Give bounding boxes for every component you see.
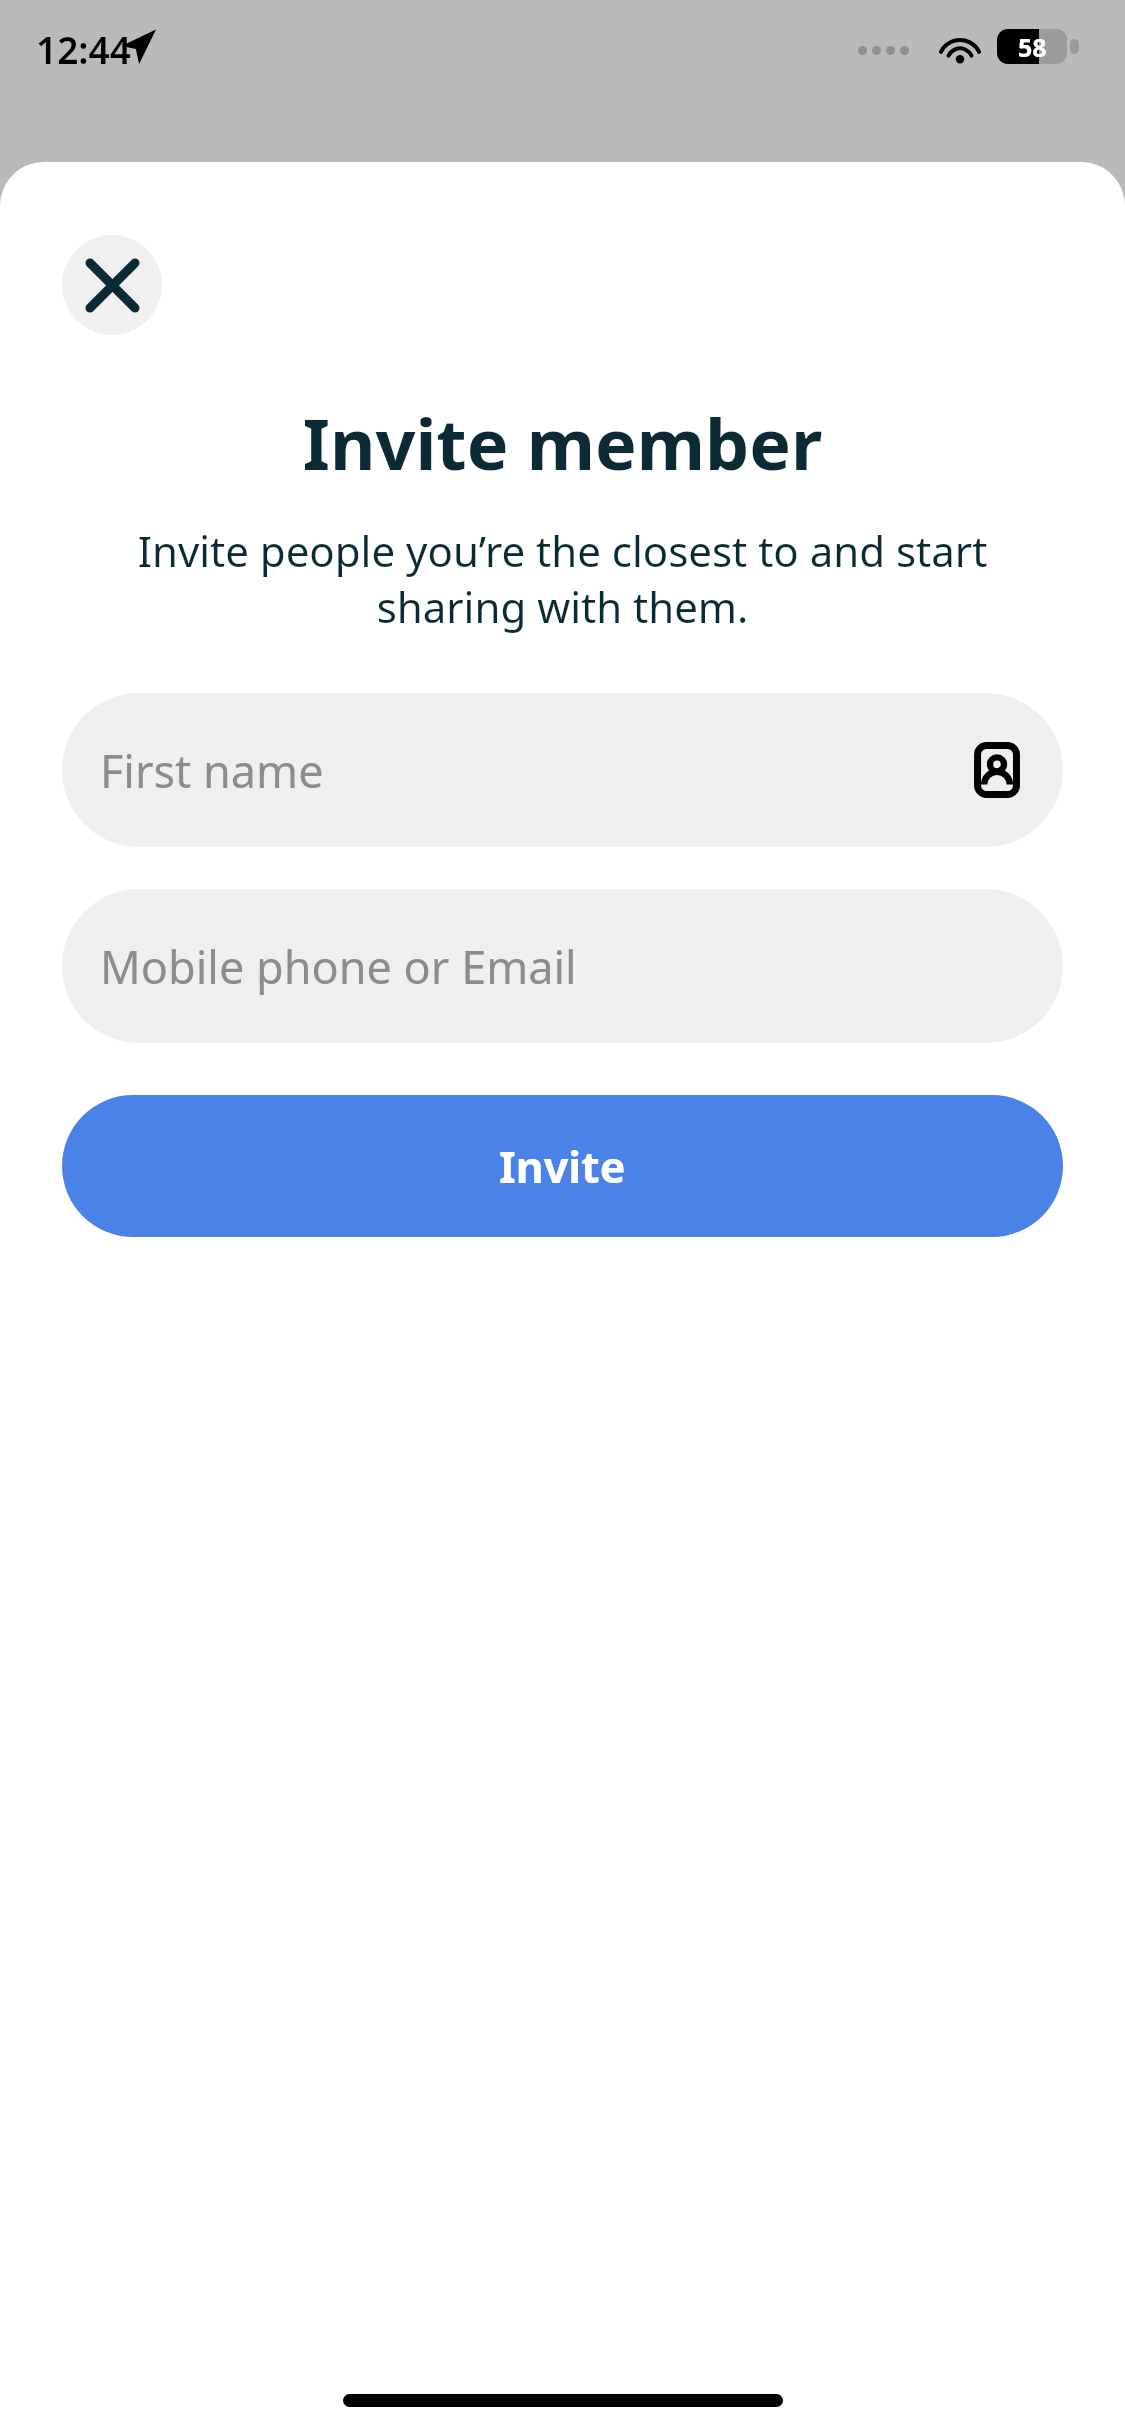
staticText: Invite member xyxy=(0,395,1125,490)
button[interactable]: Close xyxy=(62,235,162,335)
staticText: First name xyxy=(100,740,324,801)
staticText: 12:44 xyxy=(36,24,131,74)
button[interactable]: First name xyxy=(62,693,1063,847)
button[interactable]: Invite xyxy=(62,1095,1063,1237)
staticText: 58 xyxy=(1018,30,1047,64)
staticText: Invite people you’re the closest to and … xyxy=(78,522,1047,635)
staticText: Invite xyxy=(499,1137,626,1196)
button[interactable]: Mobile phone or Email xyxy=(62,889,1063,1043)
staticText: Mobile phone or Email xyxy=(100,936,577,997)
